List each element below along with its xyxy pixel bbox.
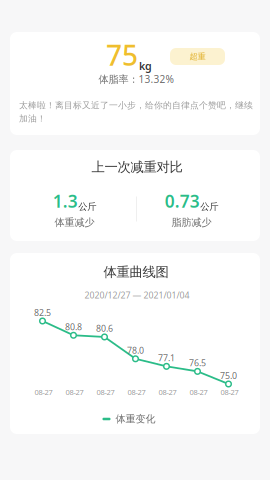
staticText: 82.5	[34, 306, 51, 318]
staticText: 08-27	[65, 387, 83, 397]
staticText: 上一次减重对比	[91, 159, 182, 175]
staticText: 08-27	[34, 387, 52, 397]
staticText: 80.6	[96, 322, 113, 334]
staticText: 体重变化	[115, 413, 155, 425]
staticText: 体重减少	[54, 216, 94, 229]
staticText: 体重曲线图	[103, 264, 168, 280]
staticText: 超重	[189, 51, 205, 62]
staticText: 公斤	[200, 201, 218, 212]
staticText: 1.3	[53, 189, 78, 213]
staticText: 08-27	[189, 387, 207, 397]
staticText: 77.1	[158, 352, 175, 364]
staticText: 78.0	[127, 344, 144, 356]
staticText: 体脂率：13.32%	[98, 72, 173, 86]
staticText: 公斤	[78, 201, 96, 212]
staticText: 08-27	[158, 387, 176, 397]
staticText: 08-27	[220, 387, 238, 397]
staticText: 0.73	[165, 189, 200, 213]
staticText: 脂肪减少	[171, 216, 211, 229]
staticText: 08-27	[127, 387, 145, 397]
staticText: 80.8	[65, 321, 82, 333]
staticText: 75.0	[220, 369, 237, 381]
staticText: 太棒啦！离目标又近了一小步，给你的自律点个赞吧，继续加油！	[19, 100, 253, 124]
staticText: 75	[106, 36, 138, 74]
staticText: 76.5	[189, 357, 206, 369]
staticText: kg	[139, 58, 152, 73]
staticText: 2020/12/27 — 2021/01/04	[84, 289, 189, 301]
staticText: 08-27	[96, 387, 114, 397]
